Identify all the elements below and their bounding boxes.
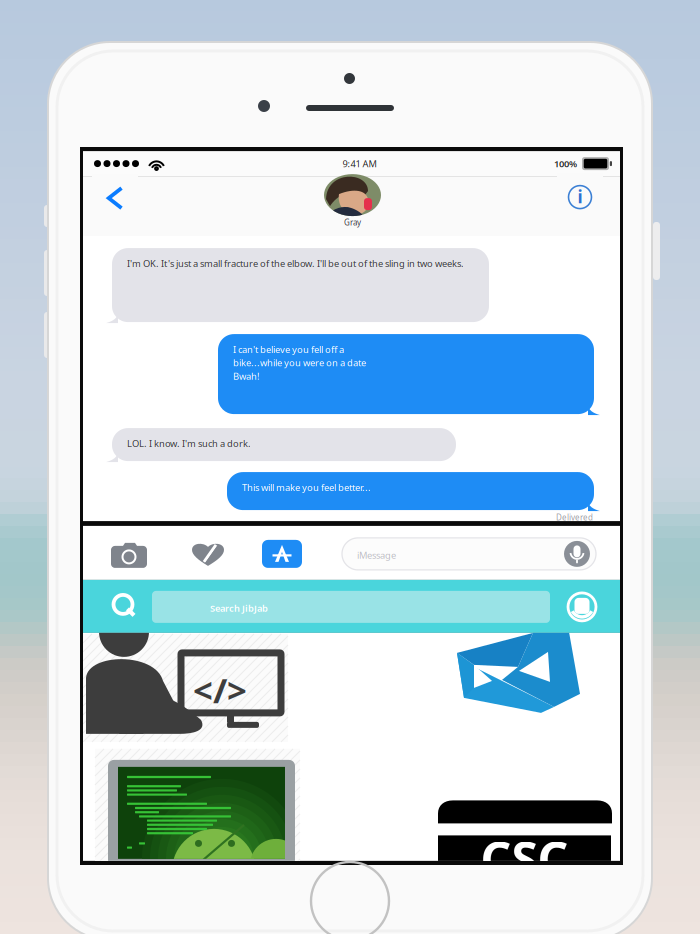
button[interactable]: App Store (257, 532, 307, 576)
staticText: I'm OK. It's just a small fracture of th… (127, 257, 464, 269)
button[interactable]: Back (92, 174, 138, 222)
button[interactable]: JibJab (560, 587, 604, 627)
button[interactable]: Search JibJab (152, 591, 550, 623)
button[interactable]: Info (557, 173, 603, 221)
staticText: I can't believe you fell off a (233, 343, 344, 355)
staticText: LOL. I know. I'm such a dork. (127, 437, 251, 449)
staticText: 9:41 AM (342, 157, 376, 170)
staticText: iMessage (357, 549, 396, 561)
button[interactable]: Search (101, 587, 149, 627)
staticText: This will make you feel better... (242, 481, 371, 493)
staticText: Gray (344, 217, 361, 228)
button[interactable]: Message field (342, 538, 596, 570)
staticText: Bwah! (233, 370, 260, 382)
staticText: Delivered (556, 512, 593, 523)
staticText: 100% (554, 157, 577, 170)
staticText: i (577, 185, 582, 208)
button[interactable]: Camera (102, 532, 156, 576)
staticText: </> (193, 667, 247, 713)
staticText: CSC (480, 826, 568, 890)
staticText: bike...while you were on a date (233, 356, 366, 369)
button[interactable]: Digital Touch (184, 532, 232, 576)
staticText: Search JibJab (210, 602, 268, 614)
